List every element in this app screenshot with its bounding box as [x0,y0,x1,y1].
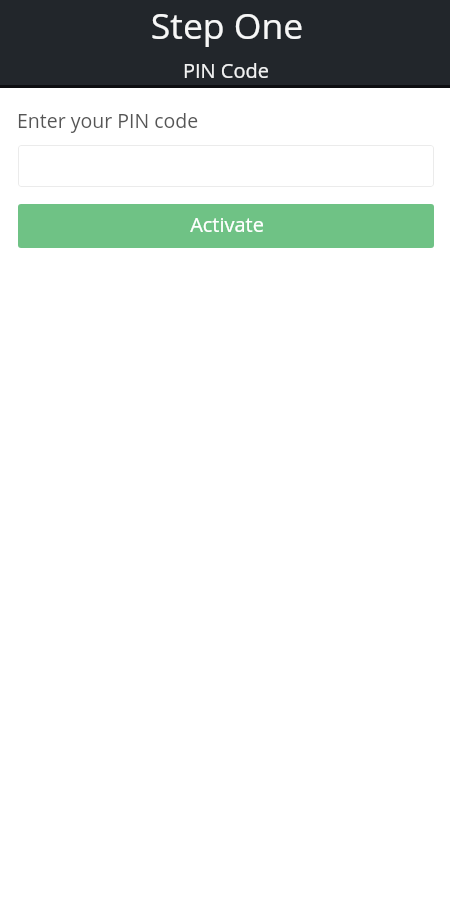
staticText: Step One [2,1,450,49]
staticText: PIN Code [1,57,450,84]
staticText: Activate [19,211,434,238]
button[interactable]: Activate [18,204,434,248]
button[interactable]: PIN code input [18,145,434,187]
staticText: Enter your PIN code [17,107,199,134]
